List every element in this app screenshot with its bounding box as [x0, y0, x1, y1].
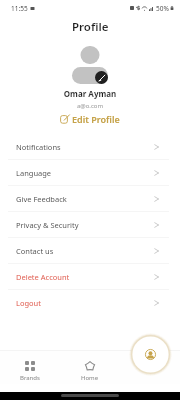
button[interactable]: Privacy & Security [0, 212, 180, 238]
staticText: Contact us [16, 246, 54, 256]
staticText: Delete Account [16, 272, 70, 282]
button[interactable]: Give Feedback [0, 186, 180, 212]
staticText: Profile [72, 19, 109, 35]
button[interactable]: Brands [0, 354, 60, 388]
button[interactable]: Language [0, 160, 180, 186]
staticText: Privacy & Security [16, 220, 79, 230]
staticText: Logout [16, 298, 41, 308]
staticText: Give Feedback [16, 194, 67, 204]
staticText: 50% [156, 4, 169, 13]
staticText: Language [16, 168, 52, 178]
button[interactable]: Notifications [0, 134, 180, 160]
button[interactable]: Edit photo [95, 71, 108, 84]
staticText: Omar Ayman [0, 88, 180, 99]
staticText: Notifications [16, 142, 61, 152]
button[interactable]: Logout [0, 290, 180, 316]
button[interactable]: Delete Account [0, 264, 180, 290]
staticText: Brands [20, 374, 40, 382]
button[interactable]: Contact us [0, 238, 180, 264]
staticText: a@o.com [0, 102, 180, 110]
button[interactable]: Home [60, 354, 120, 388]
button[interactable]: Edit Profile [58, 112, 122, 126]
button[interactable]: Profile [129, 333, 172, 376]
staticText: Edit Profile [72, 113, 120, 125]
staticText: Home [81, 374, 99, 382]
staticText: 11:55 [11, 4, 28, 13]
